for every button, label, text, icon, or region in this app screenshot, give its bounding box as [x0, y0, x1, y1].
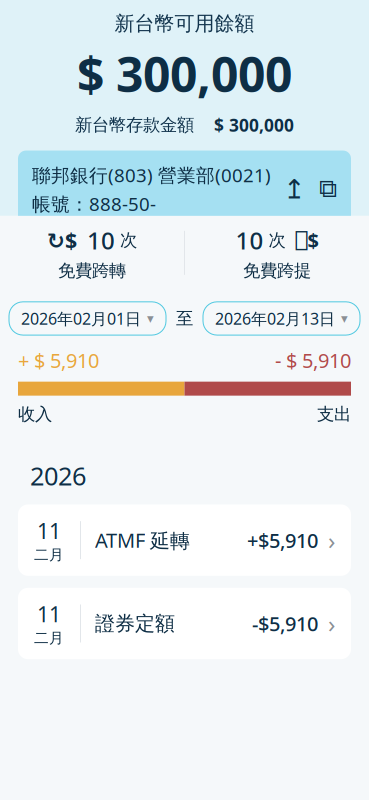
staticText: 11	[37, 600, 61, 628]
staticText: 次	[268, 229, 285, 251]
staticText: 聯邦銀行(803) 營業部(0021)	[32, 162, 271, 187]
staticText: 新台幣存款金額	[75, 114, 194, 136]
staticText: 二月	[34, 546, 64, 564]
staticText: ⧉	[319, 177, 337, 202]
button[interactable]: 聯邦銀行(803) 營業部(0021)	[18, 150, 351, 228]
staticText: 2026	[30, 459, 86, 492]
staticText: $ 300,000	[77, 42, 292, 105]
staticText: 2026年02月01日	[21, 308, 141, 329]
staticText: + $ 5,910	[18, 347, 99, 374]
staticText: ↻$	[47, 226, 77, 254]
staticText: 二月	[34, 629, 64, 647]
staticText: ▾	[147, 311, 154, 326]
staticText: 11	[37, 516, 61, 545]
staticText: 帳號：888-50-	[32, 191, 156, 216]
staticText: 10	[87, 224, 115, 256]
staticText: +$5,910	[247, 527, 318, 553]
staticText: 2026年02月13日	[215, 308, 335, 329]
staticText: -$5,910	[252, 610, 318, 637]
staticText: - $ 5,910	[275, 347, 351, 374]
button[interactable]: 11	[0, 504, 369, 576]
button[interactable]: 2026年02月01日	[9, 302, 166, 335]
staticText: 至	[176, 308, 193, 329]
button[interactable]: 11	[0, 588, 369, 659]
staticText: $ 300,000	[214, 113, 294, 136]
staticText: 免費跨提	[243, 260, 311, 281]
staticText: 新台幣可用餘額	[114, 11, 254, 36]
staticText: 證券定額	[95, 611, 175, 636]
staticText: ›	[328, 524, 335, 556]
staticText: 次	[120, 229, 137, 251]
staticText: ⎕$	[295, 227, 318, 253]
staticText: 收入	[18, 404, 52, 425]
staticText: ›	[328, 608, 335, 639]
staticText: 10	[235, 224, 263, 256]
staticText: ↥	[283, 174, 305, 204]
staticText: ATMF 延轉	[95, 527, 190, 553]
staticText: 支出	[317, 404, 351, 425]
staticText: 免費跨轉	[58, 260, 126, 281]
staticText: ▾	[341, 311, 348, 326]
button[interactable]: 2026年02月13日	[203, 302, 360, 335]
